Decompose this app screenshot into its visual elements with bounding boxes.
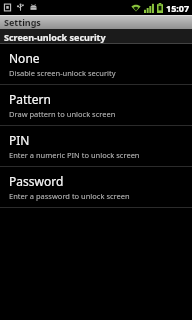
button[interactable]: Password bbox=[0, 167, 192, 207]
staticText: Password bbox=[9, 173, 64, 189]
button[interactable]: Settings, up bbox=[0, 15, 192, 29]
button[interactable]: Pattern bbox=[0, 85, 192, 125]
staticText: Settings bbox=[4, 16, 41, 28]
staticText: Draw pattern to unlock screen bbox=[9, 109, 116, 119]
staticText: 15:07 bbox=[166, 2, 190, 14]
staticText: Enter a password to unlock screen bbox=[9, 191, 130, 201]
staticText: None bbox=[9, 50, 40, 66]
staticText: Screen-unlock security bbox=[4, 31, 106, 43]
button[interactable]: PIN bbox=[0, 126, 192, 166]
staticText: Disable screen-unlock security bbox=[9, 68, 116, 78]
staticText: Enter a numeric PIN to unlock screen bbox=[9, 150, 140, 160]
staticText: Pattern bbox=[9, 91, 51, 107]
button[interactable]: None bbox=[0, 44, 192, 84]
staticText: PIN bbox=[9, 132, 30, 148]
